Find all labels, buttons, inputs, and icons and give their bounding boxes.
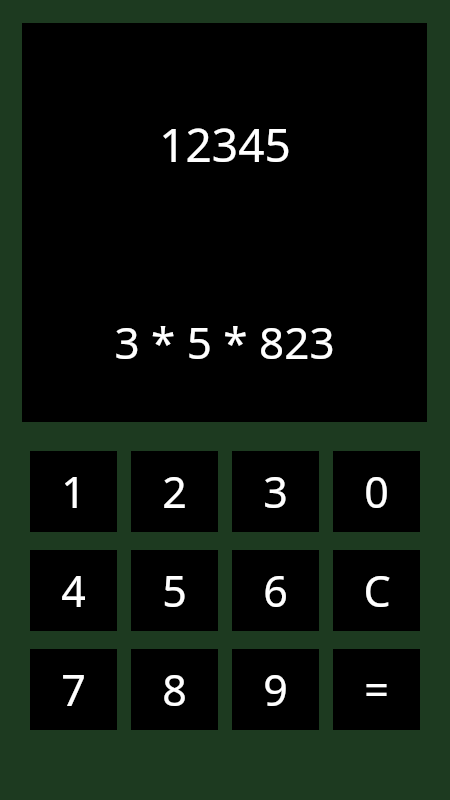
button[interactable]: 8 <box>131 649 218 730</box>
button[interactable]: 7 <box>30 649 117 730</box>
button[interactable]: 9 <box>232 649 319 730</box>
staticText: C <box>363 561 391 620</box>
staticText: 12345 <box>159 113 291 176</box>
button[interactable]: 4 <box>30 550 117 631</box>
button[interactable]: = <box>333 649 420 730</box>
staticText: 0 <box>364 462 389 521</box>
staticText: 9 <box>263 660 288 719</box>
staticText: 8 <box>162 660 187 719</box>
button[interactable]: 12345 <box>22 23 427 422</box>
staticText: 1 <box>61 462 86 521</box>
button[interactable]: 6 <box>232 550 319 631</box>
button[interactable]: 1 <box>30 451 117 532</box>
button[interactable]: 3 <box>232 451 319 532</box>
button[interactable]: 0 <box>333 451 420 532</box>
staticText: 3 <box>263 462 288 521</box>
staticText: 2 <box>162 462 187 521</box>
button[interactable]: C <box>333 550 420 631</box>
button[interactable]: 2 <box>131 451 218 532</box>
staticText: 7 <box>61 660 86 719</box>
staticText: 3 * 5 * 823 <box>114 312 335 372</box>
staticText: 4 <box>61 561 86 620</box>
staticText: 6 <box>263 561 288 620</box>
button[interactable]: 5 <box>131 550 218 631</box>
staticText: = <box>364 660 389 719</box>
staticText: 5 <box>162 561 187 620</box>
